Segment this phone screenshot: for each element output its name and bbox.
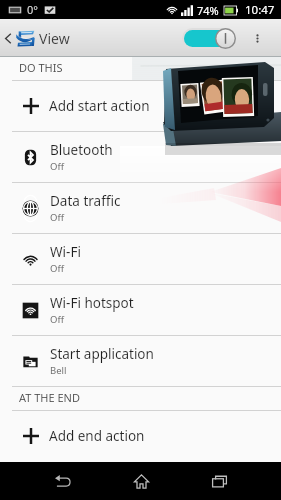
- button[interactable]: Back: [0, 462, 125, 500]
- staticText: 74%: [197, 3, 219, 18]
- staticText: Off: [50, 160, 64, 173]
- staticText: Bluetooth: [50, 141, 113, 159]
- staticText: View: [39, 29, 70, 48]
- staticText: Off: [50, 313, 64, 326]
- staticText: Wi-Fi hotspot: [50, 294, 134, 312]
- staticText: Data traffic: [50, 192, 121, 210]
- staticText: Wi-Fi: [50, 243, 81, 261]
- staticText: Add start action: [49, 97, 150, 115]
- button[interactable]: Wi-Fi hotspot: [0, 285, 281, 335]
- staticText: DO THIS: [19, 60, 63, 75]
- staticText: 0°: [27, 2, 38, 17]
- staticText: AT THE END: [19, 390, 80, 405]
- button[interactable]: Bluetooth: [0, 132, 281, 182]
- button[interactable]: Start application: [0, 336, 281, 386]
- staticText: Bell: [50, 364, 67, 377]
- button[interactable]: Home: [125, 462, 158, 500]
- button[interactable]: More options: [236, 20, 278, 57]
- staticText: Start application: [50, 345, 154, 363]
- button[interactable]: Add start action: [0, 81, 281, 131]
- button[interactable]: Data traffic: [0, 183, 281, 233]
- button[interactable]: Recent apps: [158, 462, 281, 500]
- button[interactable]: Up: [0, 20, 36, 57]
- staticText: Off: [50, 262, 64, 275]
- button[interactable]: Add end action: [0, 411, 281, 461]
- button[interactable]: Wi-Fi: [0, 234, 281, 284]
- staticText: Off: [50, 211, 64, 224]
- staticText: 10:47: [245, 2, 275, 18]
- staticText: Add end action: [49, 427, 145, 445]
- button[interactable]: Enable: [182, 28, 236, 49]
